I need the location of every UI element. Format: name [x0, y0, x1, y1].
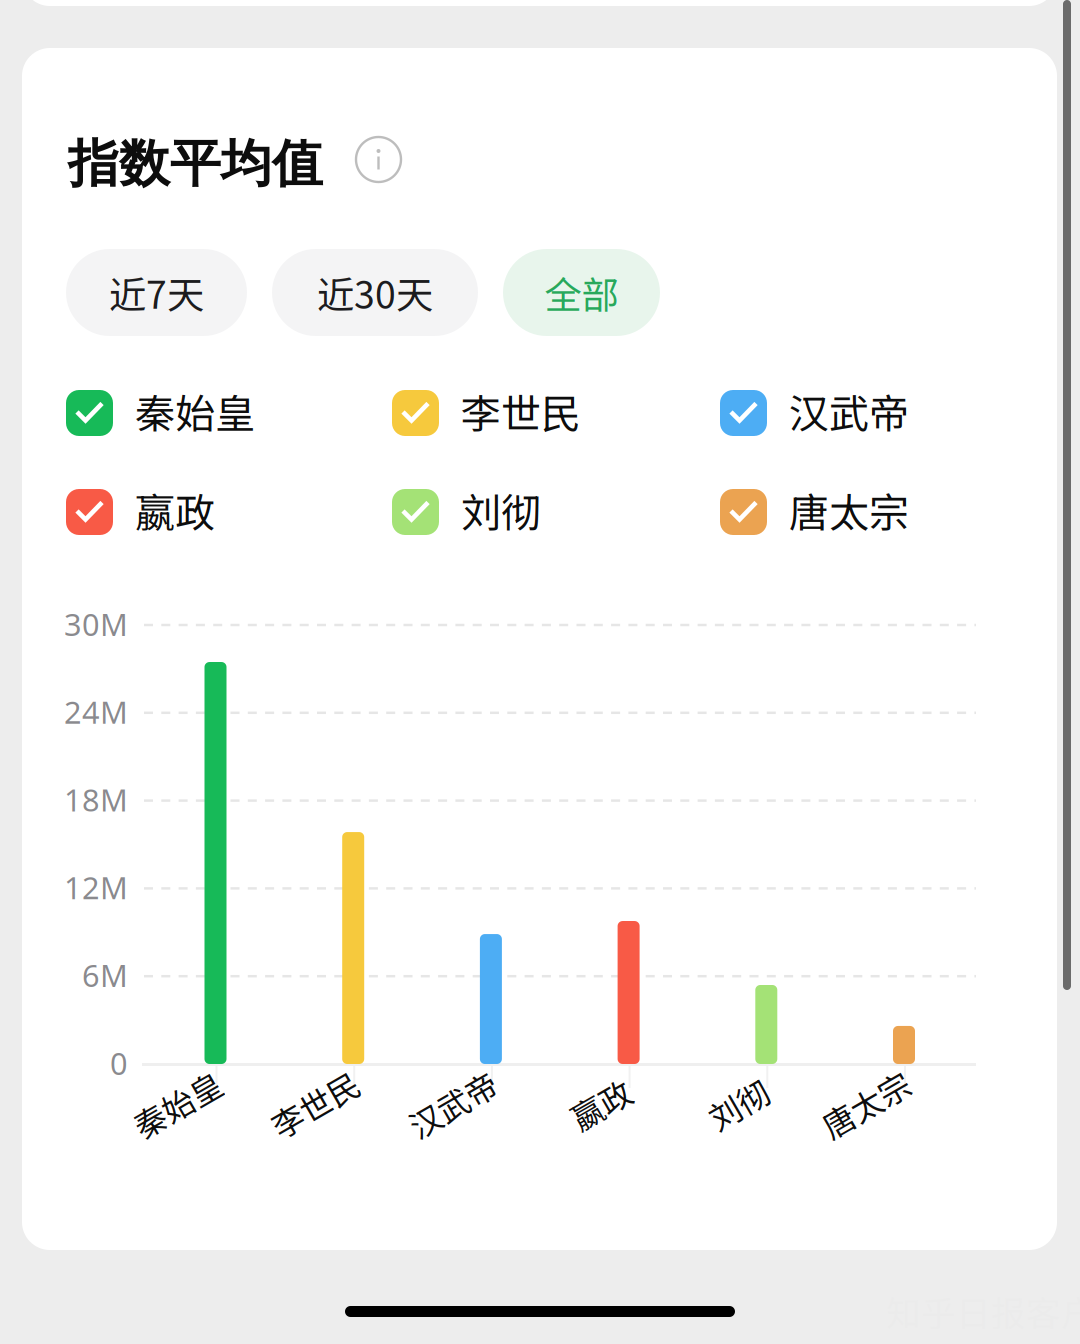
button[interactable]: 秦始皇 — [66, 387, 356, 439]
staticText: 30M — [64, 603, 128, 645]
staticText: 6M — [82, 954, 128, 996]
button[interactable]: Info — [356, 137, 401, 182]
staticText: 12M — [64, 866, 128, 908]
staticText: 18M — [64, 779, 128, 820]
button[interactable]: 近30天 — [272, 249, 478, 336]
staticText: 李世民 — [267, 1081, 363, 1127]
staticText: 汉武帝 — [405, 1081, 501, 1127]
button[interactable]: 汉武帝 — [720, 387, 1010, 439]
staticText: 秦始皇 — [129, 1081, 225, 1127]
button[interactable]: 李世民 — [392, 387, 682, 439]
button[interactable]: 唐太宗 — [720, 486, 1010, 538]
button[interactable]: 嬴政 — [66, 486, 356, 538]
staticText: 嬴政 — [569, 1081, 633, 1127]
staticText: 李世民 — [461, 382, 581, 440]
staticText: 0 — [110, 1042, 128, 1084]
staticText: 唐太宗 — [789, 481, 909, 539]
staticText: 唐太宗 — [818, 1081, 914, 1127]
staticText: 指数平均值 — [68, 132, 323, 196]
button[interactable]: 全部 — [503, 249, 660, 336]
staticText: 全部 — [544, 265, 618, 320]
staticText: 汉武帝 — [789, 382, 909, 440]
staticText: 秦始皇 — [135, 382, 255, 440]
staticText: 嬴政 — [135, 481, 215, 539]
button[interactable]: 近7天 — [66, 249, 247, 336]
staticText: 刘彻 — [706, 1081, 770, 1127]
staticText: 刘彻 — [461, 481, 541, 539]
button[interactable]: 刘彻 — [392, 486, 682, 538]
staticText: 24M — [64, 691, 128, 733]
staticText: 近7天 — [109, 265, 204, 320]
staticText: 近30天 — [317, 265, 433, 320]
